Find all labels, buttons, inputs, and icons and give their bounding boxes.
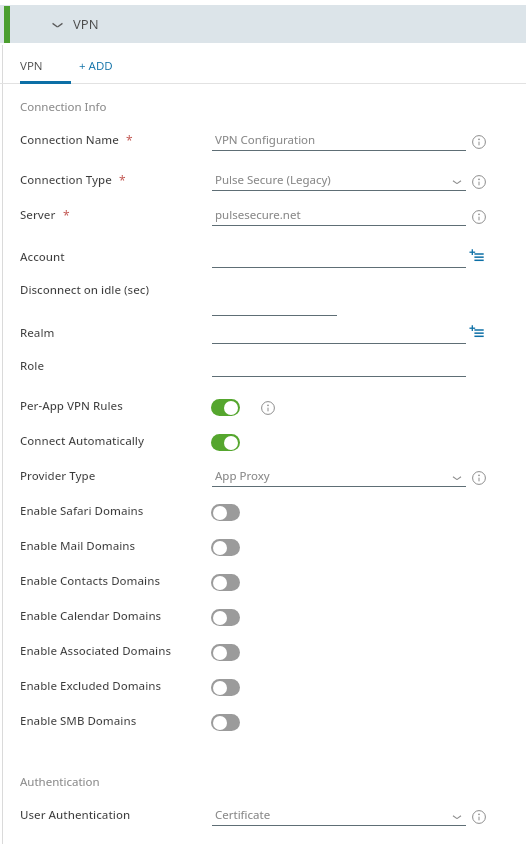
staticText: User Authentication — [20, 807, 131, 823]
button[interactable]: VPN — [0, 5, 526, 43]
button[interactable]: Connect Automatically — [211, 434, 240, 451]
staticText: Disconnect on idle (sec) — [20, 282, 150, 298]
staticText: Enable SMB Domains — [20, 713, 137, 729]
staticText: VPN — [20, 58, 43, 74]
staticText: VPN — [73, 15, 99, 33]
staticText: Account — [20, 249, 65, 265]
button[interactable]: Info — [470, 173, 487, 190]
staticText: pulsesecure.net — [215, 207, 301, 223]
staticText: App Proxy — [215, 468, 270, 484]
staticText: Server — [20, 207, 56, 223]
button[interactable]: Info — [470, 208, 487, 225]
button[interactable]: Add from list — [467, 246, 485, 264]
staticText: * — [119, 172, 126, 188]
staticText: Realm — [20, 325, 55, 341]
staticText: Connection Info — [20, 99, 107, 115]
staticText: Enable Safari Domains — [20, 503, 144, 519]
staticText: Enable Excluded Domains — [20, 678, 162, 694]
staticText: Enable Contacts Domains — [20, 573, 160, 589]
staticText: Connection Name — [20, 132, 119, 148]
button[interactable]: + ADD — [79, 58, 149, 85]
button[interactable]: Info — [470, 469, 487, 486]
staticText: Enable Associated Domains — [20, 643, 172, 659]
staticText: Role — [20, 358, 45, 374]
button[interactable] — [452, 812, 462, 822]
button[interactable]: Per-App VPN Rules — [211, 399, 240, 416]
button[interactable]: Enable Excluded Domains — [211, 679, 240, 696]
button[interactable]: Enable Contacts Domains — [211, 574, 240, 591]
button[interactable] — [452, 473, 462, 483]
staticText: Provider Type — [20, 468, 96, 484]
staticText: Connect Automatically — [20, 433, 145, 449]
staticText: + ADD — [79, 58, 113, 74]
button[interactable]: Enable Calendar Domains — [211, 609, 240, 626]
staticText: Pulse Secure (Legacy) — [215, 172, 331, 188]
staticText: Enable Mail Domains — [20, 538, 136, 554]
staticText: VPN Configuration — [215, 132, 316, 148]
button[interactable]: Enable Safari Domains — [211, 504, 240, 521]
staticText: Authentication — [20, 774, 100, 790]
staticText: Connection Type — [20, 172, 112, 188]
button[interactable]: Enable Mail Domains — [211, 539, 240, 556]
button[interactable]: Enable SMB Domains — [211, 714, 240, 731]
staticText: Certificate — [215, 807, 271, 823]
button[interactable]: VPN — [20, 58, 71, 85]
button[interactable]: Add from list — [467, 322, 485, 340]
staticText: * — [63, 207, 70, 223]
staticText: * — [126, 132, 133, 148]
button[interactable]: Enable Associated Domains — [211, 644, 240, 661]
button[interactable]: Info — [259, 399, 276, 416]
button[interactable] — [452, 177, 462, 187]
button[interactable]: Info — [470, 808, 487, 825]
button[interactable]: Info — [470, 133, 487, 150]
staticText: Enable Calendar Domains — [20, 608, 162, 624]
staticText: Per-App VPN Rules — [20, 398, 123, 414]
